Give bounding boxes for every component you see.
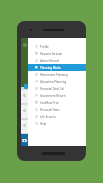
staticText: Advice Record xyxy=(40,59,60,63)
button[interactable]: Camera xyxy=(21,134,28,146)
button[interactable]: Help xyxy=(28,120,86,127)
button[interactable]: Profile xyxy=(28,43,86,50)
button[interactable]: Cashflow Trck xyxy=(28,99,86,106)
button[interactable]: Request forLoan xyxy=(28,50,86,57)
button[interactable]: Advice Record xyxy=(28,57,86,64)
button[interactable]: Education Planning xyxy=(28,78,86,85)
staticText: Help xyxy=(40,122,47,126)
staticText: Financial Goal Cal xyxy=(40,87,64,91)
button[interactable]: Retirement Planning xyxy=(28,71,86,78)
staticText: Life Insurnc xyxy=(40,115,56,119)
staticText: Financial ftnes xyxy=(40,108,60,112)
button[interactable]: Investment Return xyxy=(28,92,86,99)
button[interactable]: Financial Goal Cal xyxy=(28,85,86,92)
button[interactable]: Add xyxy=(24,84,28,89)
staticText: Profile xyxy=(40,45,49,49)
staticText: Education Planning xyxy=(40,80,67,84)
button[interactable]: Planning Modu xyxy=(28,64,86,71)
staticText: Cashflow Trck xyxy=(40,101,59,105)
button[interactable]: Financial ftnes xyxy=(28,106,86,113)
button[interactable]: Life Insurnc xyxy=(28,113,86,120)
staticText: Planning Modu xyxy=(40,66,61,70)
staticText: Investment Return xyxy=(40,94,66,98)
staticText: Request forLoan xyxy=(40,52,63,56)
staticText: Retirement Planning xyxy=(40,73,68,77)
